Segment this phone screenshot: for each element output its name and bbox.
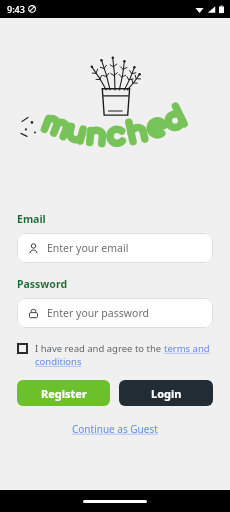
other: Agree to terms checkbox [17, 343, 28, 354]
staticText: terms and [164, 342, 210, 355]
button[interactable]: Register [17, 380, 110, 406]
staticText: 9:43 [7, 3, 25, 15]
staticText: Password [17, 277, 68, 291]
staticText: Enter your email [47, 241, 129, 255]
button[interactable]: conditions [35, 355, 82, 368]
button[interactable]: Enter your password [17, 298, 213, 328]
staticText: Enter your password [47, 306, 149, 320]
staticText: Login [151, 386, 182, 401]
button[interactable]: Login [119, 380, 213, 406]
staticText: I have read and agree to the [35, 342, 164, 355]
button[interactable]: Agree to terms checkbox [17, 342, 213, 368]
button[interactable]: Enter your email [17, 233, 213, 263]
staticText: Email [17, 212, 46, 226]
staticText: Register [41, 386, 87, 401]
button[interactable]: Continue as Guest [68, 420, 162, 438]
